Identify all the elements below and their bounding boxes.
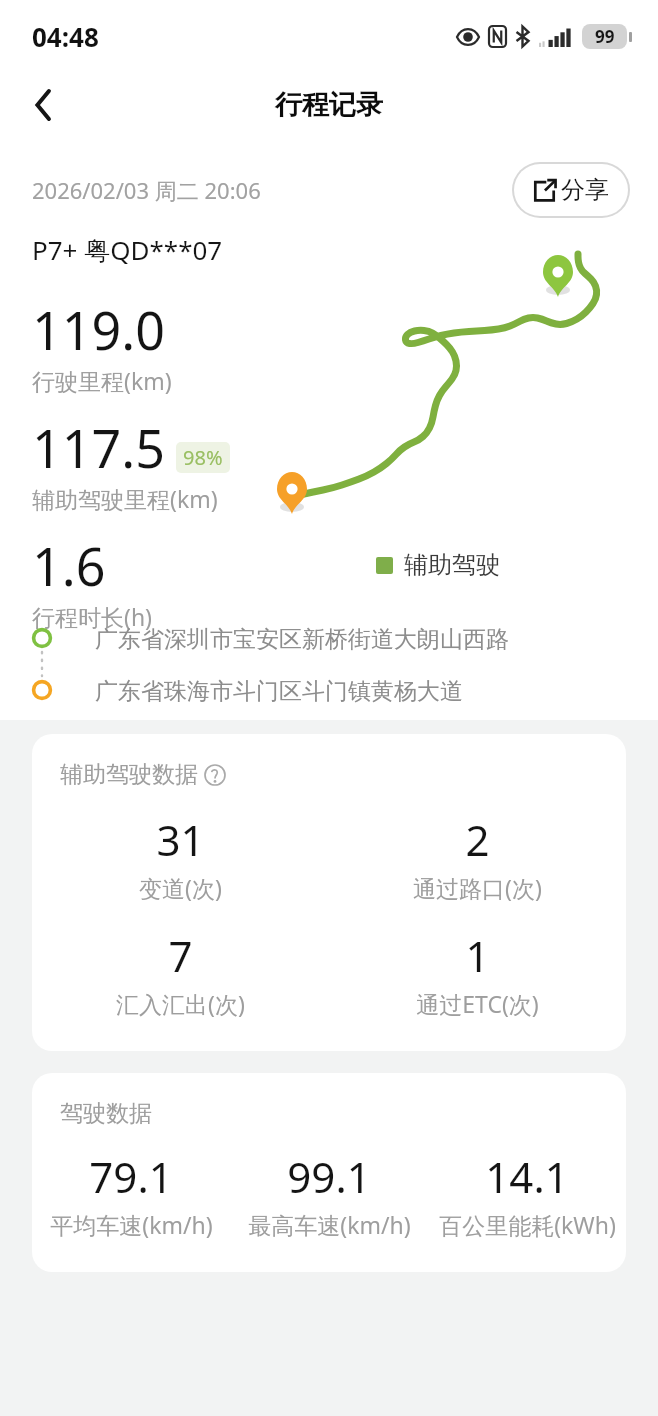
staticText: 通过ETC(次) [416,988,539,1019]
staticText: 79.1 [89,1148,173,1205]
staticText: 2 [465,811,490,868]
staticText: 分享 [561,175,609,205]
staticText: 1 [465,927,490,984]
staticText: 99.1 [287,1148,371,1205]
staticText: 通过路口(次) [413,872,542,903]
staticText: 驾驶数据 [60,1099,152,1128]
staticText: 2026/02/03 周二 20:06 [32,175,261,205]
staticText: 最高车速(km/h) [248,1209,411,1240]
staticText: 辅助驾驶数据 [60,760,198,789]
staticText: 98% [183,444,223,471]
staticText: 04:48 [32,19,99,54]
staticText: 7 [168,927,193,984]
staticText: 99 [595,25,615,48]
staticText: 行程记录 [275,88,383,122]
staticText: 广东省珠海市斗门区斗门镇黄杨大道 [95,677,463,706]
staticText: 百公里能耗(kWh) [439,1209,616,1240]
staticText: 行程时长(h) [32,601,153,632]
button[interactable]: 分享 [514,164,628,216]
staticText: 辅助驾驶 [404,550,500,580]
staticText: 平均车速(km/h) [50,1209,213,1240]
staticText: 行驶里程(km) [32,365,172,396]
staticText: 辅助驾驶里程(km) [32,483,218,514]
staticText: 31 [156,811,205,868]
staticText: 变道(次) [139,872,222,903]
staticText: 1.6 [32,530,106,601]
staticText: 汇入汇出(次) [116,988,245,1019]
button[interactable]: Back [16,78,70,132]
button[interactable]: 帮助说明 [204,764,226,786]
staticText: 14.1 [485,1148,569,1205]
staticText: 119.0 [32,294,165,365]
staticText: P7+ 粤QD***07 [32,232,223,268]
staticText: 117.5 [32,412,165,483]
staticText: 广东省深圳市宝安区新桥街道大朗山西路 [95,625,509,654]
